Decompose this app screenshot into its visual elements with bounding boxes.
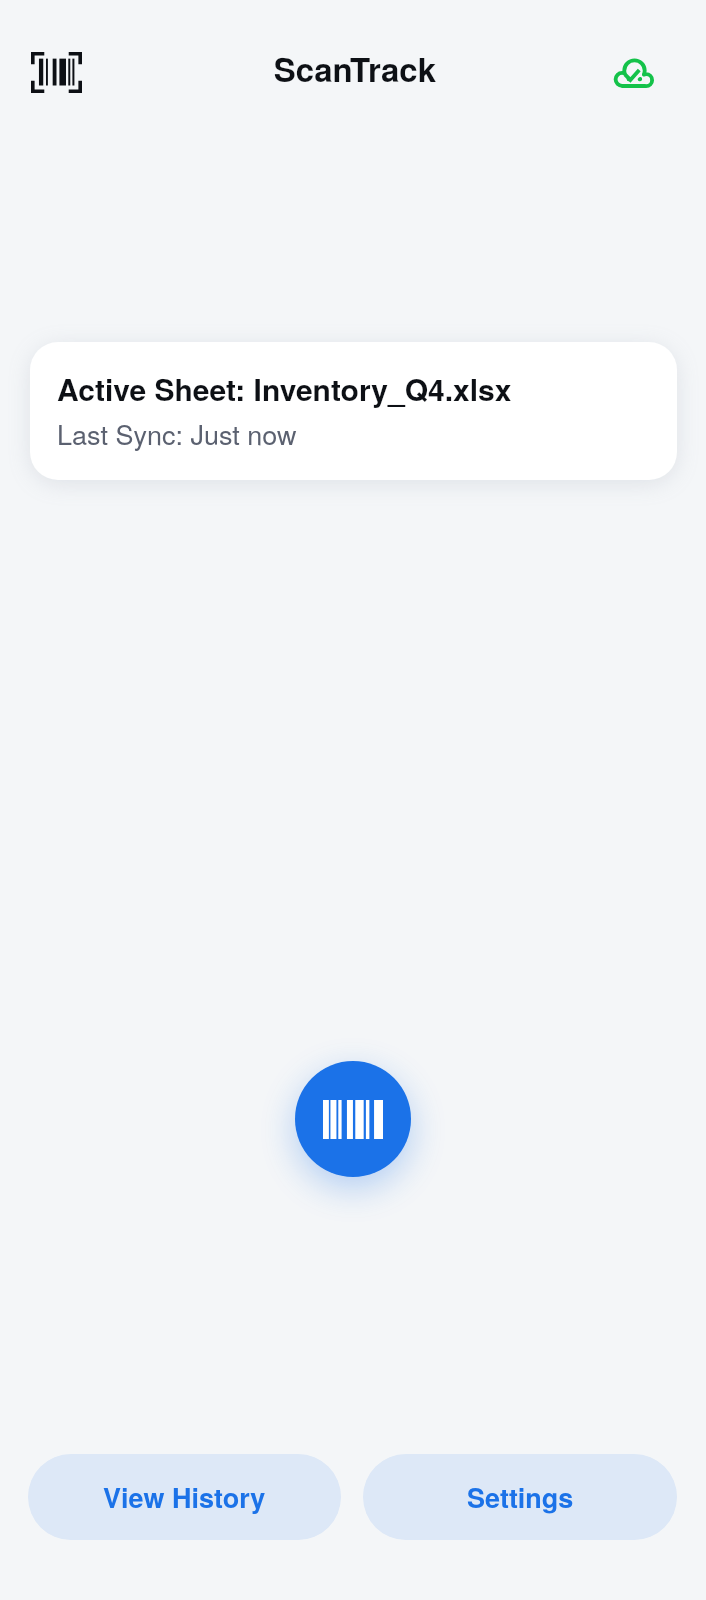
button[interactable]: Active Sheet: Inventory_Q4.xlsx [30, 342, 677, 480]
button[interactable]: Settings [363, 1454, 677, 1540]
staticText: Active Sheet: Inventory_Q4.xlsx [57, 367, 512, 410]
button[interactable]: Sync status [596, 35, 670, 109]
staticText: Last Sync: Just now [57, 414, 297, 453]
staticText: ScanTrack [2, 45, 706, 92]
button[interactable]: Scan barcode [19, 35, 93, 109]
button[interactable]: Scan barcode [295, 1061, 411, 1177]
staticText: Settings [467, 1478, 574, 1517]
button[interactable]: View History [28, 1454, 341, 1540]
staticText: View History [103, 1478, 266, 1517]
